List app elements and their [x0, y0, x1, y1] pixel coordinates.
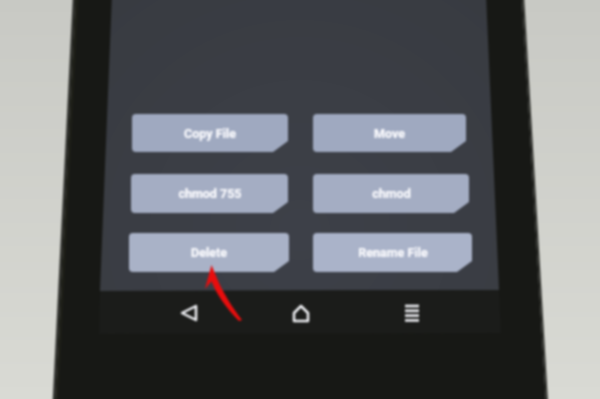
button[interactable]: Home	[283, 295, 319, 331]
button[interactable]: Copy File	[132, 114, 288, 152]
button[interactable]: Delete	[129, 233, 289, 272]
button[interactable]: chmod 755	[131, 174, 288, 213]
staticText: Delete	[191, 245, 227, 260]
button[interactable]: chmod	[313, 174, 469, 213]
staticText: Copy File	[184, 126, 236, 141]
staticText: Rename File	[358, 245, 428, 260]
button[interactable]: Move	[313, 114, 466, 152]
staticText: Move	[374, 126, 405, 141]
button[interactable]: Rename File	[313, 233, 472, 272]
button[interactable]: Back	[171, 295, 207, 331]
staticText: chmod 755	[178, 186, 242, 201]
button[interactable]: Recent apps	[394, 295, 430, 331]
staticText: chmod	[372, 186, 411, 201]
